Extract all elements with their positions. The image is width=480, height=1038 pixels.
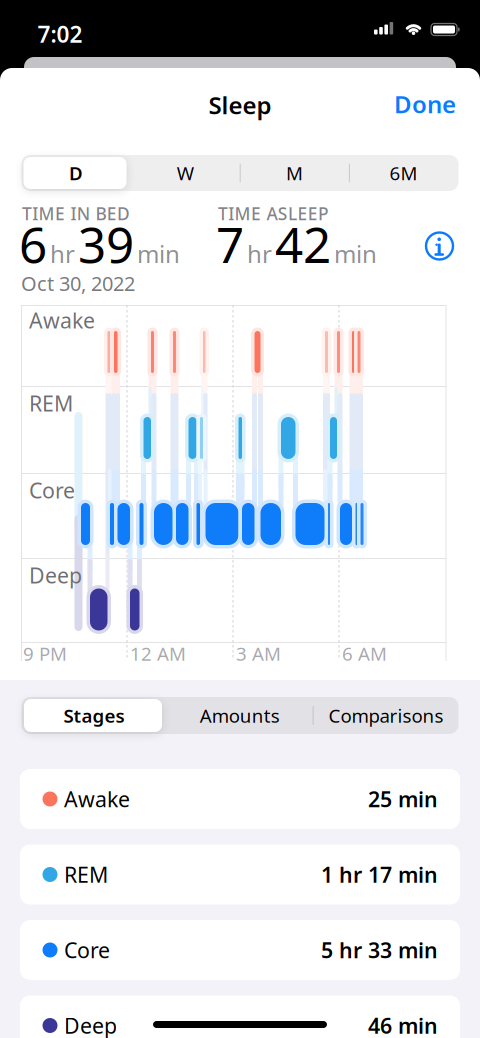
staticText: Awake <box>64 785 130 813</box>
button[interactable]: Core <box>20 920 460 980</box>
staticText: Oct 30, 2022 <box>21 270 135 297</box>
staticText: Core <box>29 476 75 504</box>
button[interactable]: Awake <box>20 769 460 829</box>
staticText: Awake <box>29 306 95 334</box>
staticText: M <box>286 161 303 185</box>
button[interactable]: Done <box>376 87 456 121</box>
staticText: Core <box>64 936 110 964</box>
button[interactable]: REM <box>20 844 460 904</box>
staticText: 3 AM <box>236 641 281 666</box>
staticText: 5 hr 33 min <box>321 936 438 964</box>
button[interactable]: Amounts <box>167 697 312 734</box>
staticText: REM <box>29 389 73 417</box>
staticText: 7:02 <box>37 19 82 49</box>
staticText: Amounts <box>200 703 280 728</box>
staticText: min <box>137 238 180 269</box>
staticText: W <box>177 161 194 185</box>
staticText: min <box>334 238 377 269</box>
staticText: 6 <box>19 211 47 276</box>
staticText: Done <box>394 88 456 120</box>
staticText: 7 <box>216 211 244 276</box>
staticText: D <box>69 161 83 185</box>
staticText: TIME ASLEEP <box>218 202 329 225</box>
staticText: 6 AM <box>342 641 387 666</box>
staticText: 39 <box>78 211 134 276</box>
staticText: 1 hr 17 min <box>321 860 438 889</box>
staticText: REM <box>64 860 108 889</box>
staticText: hr <box>247 238 272 269</box>
staticText: 9 PM <box>23 641 67 666</box>
staticText: Stages <box>63 703 124 728</box>
button[interactable]: 6M <box>349 155 458 191</box>
button[interactable]: M <box>240 155 349 191</box>
button[interactable]: W <box>131 155 240 191</box>
staticText: Comparisons <box>328 703 443 728</box>
staticText: 25 min <box>368 785 438 813</box>
staticText: TIME IN BED <box>22 202 130 225</box>
button[interactable]: Comparisons <box>313 697 458 734</box>
staticText: 42 <box>275 211 331 276</box>
button[interactable]: More information <box>0 0 480 270</box>
staticText: 12 AM <box>130 641 186 666</box>
button[interactable]: D <box>21 155 130 191</box>
staticText: hr <box>50 238 75 269</box>
staticText: 46 min <box>368 1011 438 1038</box>
staticText: Sleep <box>208 89 271 121</box>
staticText: Deep <box>64 1011 117 1038</box>
staticText: Deep <box>29 561 82 589</box>
staticText: 6M <box>390 161 418 185</box>
button[interactable]: Stages <box>21 697 166 734</box>
button[interactable]: Deep <box>20 995 460 1038</box>
